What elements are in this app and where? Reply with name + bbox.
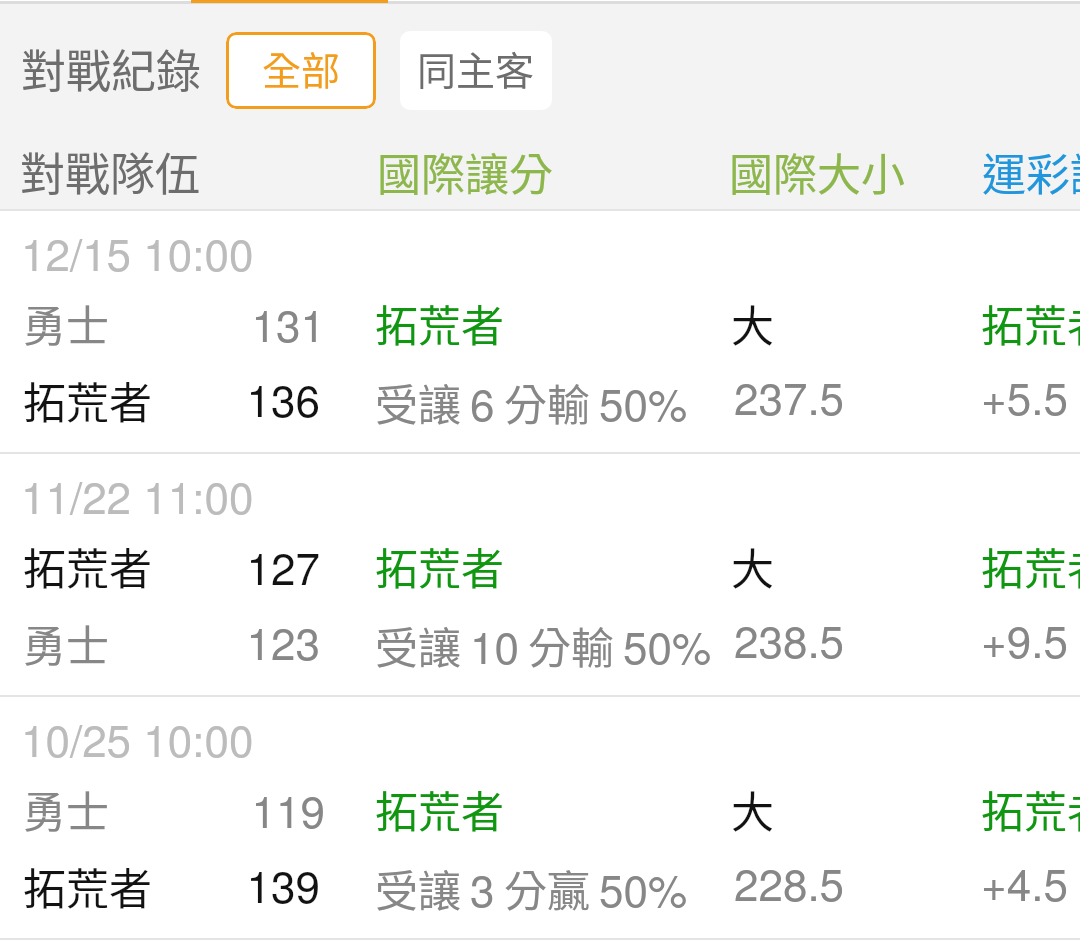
staticText: 238.5: [734, 607, 845, 670]
staticText: 10/25 10:00: [21, 706, 254, 769]
staticText: 拓荒者: [981, 778, 1080, 840]
staticText: 119: [150, 777, 325, 840]
staticText: 123: [150, 609, 320, 672]
staticText: 131: [150, 291, 325, 354]
staticText: 分輸: [504, 371, 590, 433]
staticText: 127: [150, 534, 320, 597]
staticText: 大: [731, 778, 774, 840]
staticText: 受讓: [375, 371, 461, 433]
staticText: 50%: [599, 370, 688, 433]
staticText: 237.5: [734, 364, 845, 427]
staticText: 136: [150, 366, 320, 429]
staticText: 全部: [262, 40, 341, 96]
staticText: 分贏: [504, 857, 590, 919]
staticText: 運彩讓分: [982, 140, 1080, 204]
staticText: 拓荒者: [981, 535, 1080, 597]
staticText: 對戰紀錄: [21, 36, 202, 101]
button[interactable]: 11/22 11:00: [0, 454, 1080, 695]
staticText: 勇士: [23, 292, 109, 354]
staticText: 拓荒者: [981, 292, 1080, 354]
staticText: 同主客: [417, 40, 535, 96]
staticText: +9.5: [981, 607, 1068, 670]
staticText: 對戰隊伍: [20, 139, 201, 204]
staticText: 拓荒者: [375, 535, 504, 597]
staticText: 228.5: [734, 850, 845, 913]
staticText: 受讓: [375, 857, 461, 919]
staticText: 50%: [599, 856, 688, 919]
staticText: +5.5: [981, 364, 1068, 427]
staticText: 139: [150, 852, 320, 915]
staticText: 6: [470, 370, 495, 433]
staticText: 拓荒者: [23, 369, 152, 431]
staticText: 拓荒者: [23, 855, 152, 917]
button[interactable]: 同主客: [400, 31, 552, 110]
staticText: 國際讓分: [377, 140, 553, 204]
staticText: 拓荒者: [375, 778, 504, 840]
staticText: 拓荒者: [23, 535, 152, 597]
button[interactable]: 12/15 10:00: [0, 211, 1080, 452]
staticText: 3: [470, 856, 495, 919]
staticText: 分輸: [528, 614, 614, 676]
button[interactable]: 10/25 10:00: [0, 697, 1080, 938]
staticText: 受讓: [375, 614, 461, 676]
button[interactable]: 全部: [226, 32, 376, 109]
staticText: +4.5: [981, 850, 1068, 913]
staticText: 10: [470, 613, 519, 676]
staticText: 大: [731, 535, 774, 597]
staticText: 11/22 11:00: [21, 463, 254, 526]
staticText: 50%: [623, 613, 712, 676]
staticText: 勇士: [23, 778, 109, 840]
staticText: 勇士: [23, 612, 109, 674]
staticText: 大: [731, 292, 774, 354]
staticText: 12/15 10:00: [21, 220, 254, 283]
staticText: 國際大小: [729, 140, 905, 204]
staticText: 拓荒者: [375, 292, 504, 354]
